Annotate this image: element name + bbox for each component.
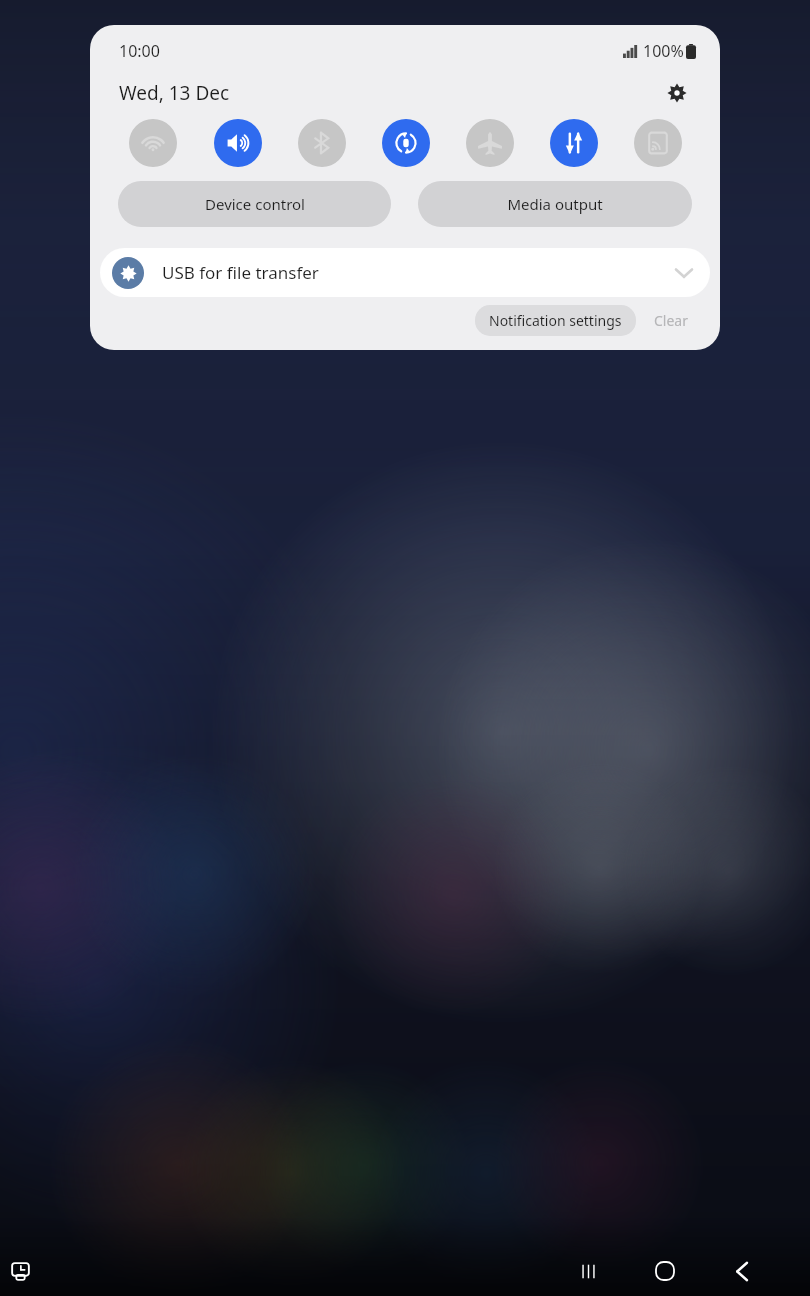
button[interactable]: Wi-Fi [129, 119, 177, 167]
button[interactable]: Media output [418, 181, 692, 227]
button[interactable]: Sound [214, 119, 262, 167]
button[interactable]: Back [720, 1249, 764, 1293]
button[interactable]: Auto rotate [382, 119, 430, 167]
button[interactable]: Airplane mode [466, 119, 514, 167]
staticText: Media output [507, 194, 603, 214]
staticText: Clear [654, 311, 688, 330]
staticText: 100% [643, 40, 684, 62]
staticText: Notification settings [489, 311, 622, 330]
button[interactable]: Recent apps [566, 1249, 610, 1293]
button[interactable]: Home [643, 1249, 687, 1293]
staticText: USB for file transfer [162, 261, 319, 284]
button[interactable]: Device control [118, 181, 391, 227]
button[interactable]: USB for file transfer [100, 248, 710, 297]
staticText: Wed, 13 Dec [119, 80, 230, 106]
button[interactable]: Settings [660, 76, 694, 110]
button[interactable]: Notification settings [475, 305, 636, 336]
staticText: 10:00 [119, 40, 160, 62]
button[interactable]: Mobile data [550, 119, 598, 167]
button[interactable]: Bluetooth [298, 119, 346, 167]
button[interactable]: Clear [642, 305, 700, 336]
button[interactable]: Hide keyboard [4, 1255, 36, 1287]
button[interactable]: Smart View [634, 119, 682, 167]
staticText: Device control [205, 194, 305, 214]
